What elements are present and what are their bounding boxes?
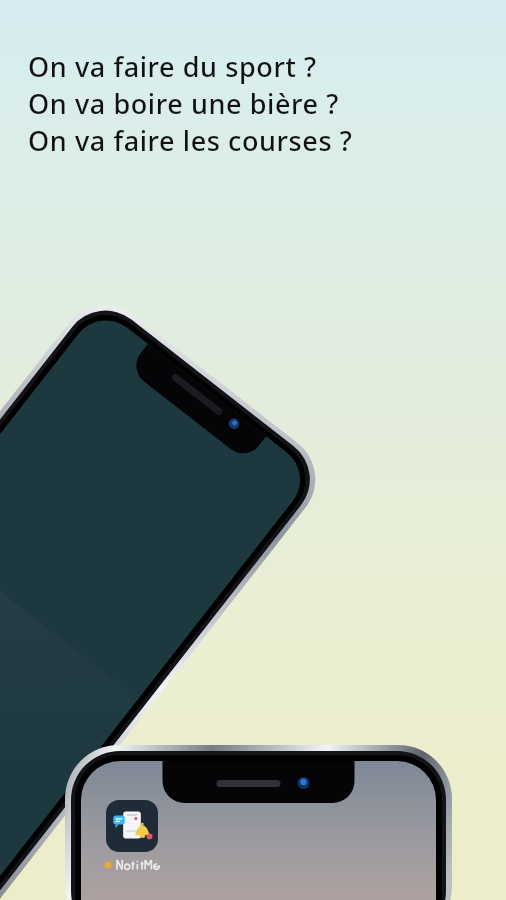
staticText: On va faire les courses ? bbox=[28, 122, 353, 159]
button[interactable]: On va faire du sport ? bbox=[26, 48, 355, 159]
staticText: On va faire du sport ? bbox=[28, 48, 317, 85]
button[interactable]: NotifMe app icon bbox=[104, 799, 154, 865]
staticText: On va boire une bière ? bbox=[28, 85, 339, 122]
